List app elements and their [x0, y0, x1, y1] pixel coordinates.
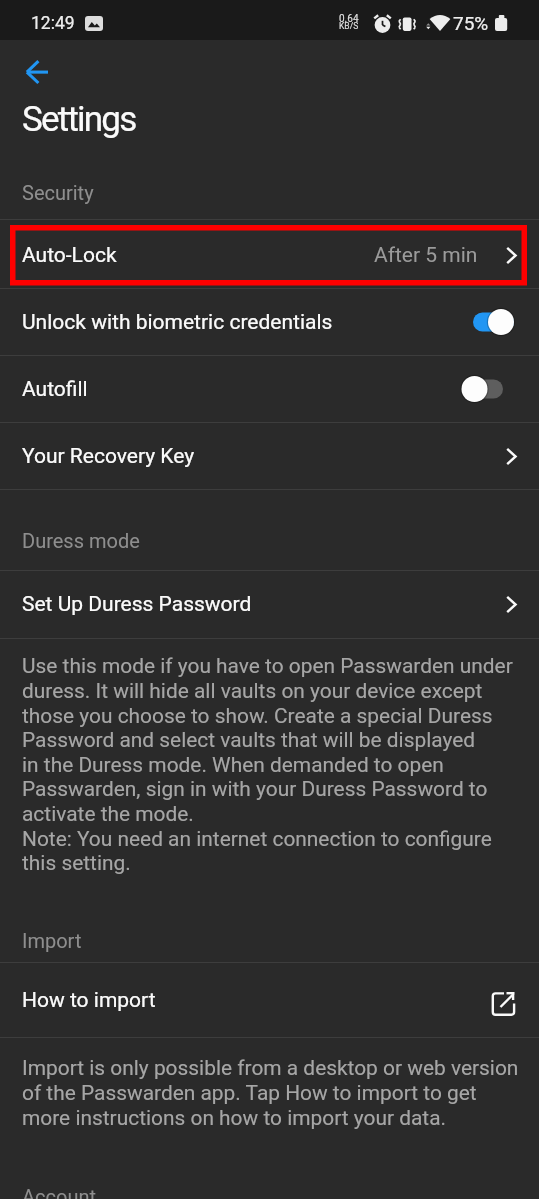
staticText: duress. It will hide all vaults on your …	[22, 679, 483, 703]
staticText: After 5 min	[374, 243, 478, 268]
staticText: 75%	[453, 12, 489, 34]
staticText: of the Passwarden app. Tap How to import…	[22, 1081, 477, 1105]
staticText: Unlock with biometric credentials	[22, 310, 333, 335]
staticText: this setting.	[22, 851, 131, 875]
staticText: Your Recovery Key	[22, 444, 195, 469]
staticText: those you choose to show. Create a speci…	[22, 704, 493, 728]
staticText: Import is only possible from a desktop o…	[22, 1056, 519, 1080]
staticText: Password and select vaults that will be …	[22, 728, 476, 752]
staticText: Auto-Lock	[22, 243, 117, 268]
staticText: activate the mode.	[22, 802, 194, 826]
staticText: 12:49	[31, 13, 75, 34]
button[interactable]: Autofill	[0, 356, 539, 422]
staticText: Duress mode	[22, 529, 140, 552]
button[interactable]: Unlock with biometric credentials	[0, 289, 539, 355]
staticText: Use this mode if you have to open Passwa…	[22, 654, 513, 678]
button[interactable]: Your Recovery Key	[0, 423, 539, 489]
staticText: in the Duress mode. When demanded to ope…	[22, 753, 444, 777]
staticText: 0.64	[339, 13, 359, 25]
staticText: Passwarden, sign in with your Duress Pas…	[22, 777, 488, 801]
staticText: Autofill	[22, 377, 88, 402]
staticText: How to import	[22, 988, 156, 1013]
staticText: Settings	[22, 99, 136, 140]
staticText: KB/S	[339, 21, 359, 31]
staticText: Security	[22, 181, 94, 204]
staticText: Account	[22, 1185, 97, 1199]
staticText: Import	[22, 929, 82, 952]
button[interactable]: How to import	[0, 963, 539, 1037]
staticText: more instructions on how to import your …	[22, 1106, 447, 1130]
button[interactable]: Auto-Lock	[0, 222, 539, 289]
button[interactable]	[15, 50, 61, 94]
button[interactable]: Set Up Duress Password	[0, 571, 539, 638]
staticText: Set Up Duress Password	[22, 592, 252, 617]
staticText: Note: You need an internet connection to…	[22, 827, 492, 851]
